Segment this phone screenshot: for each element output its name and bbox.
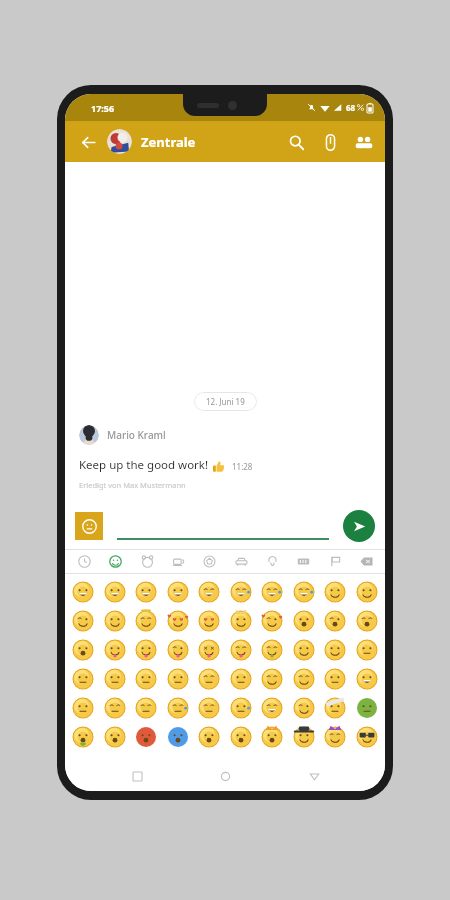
staticText: Keep up the good work! bbox=[79, 457, 209, 473]
button[interactable]: Animals bbox=[134, 550, 160, 573]
button[interactable]: Emoji bbox=[352, 577, 382, 606]
button[interactable]: Emoji bbox=[131, 693, 161, 722]
button[interactable]: Emoji bbox=[75, 512, 103, 540]
button[interactable]: Emoji bbox=[226, 693, 256, 722]
button[interactable]: Emoji bbox=[289, 606, 319, 635]
button[interactable]: Emoji bbox=[257, 577, 287, 606]
button[interactable]: Back bbox=[73, 127, 103, 157]
button[interactable]: Emoji bbox=[320, 635, 350, 664]
button[interactable]: Emoji bbox=[100, 606, 130, 635]
button[interactable]: Emoji bbox=[194, 693, 224, 722]
button[interactable]: Emoji bbox=[352, 693, 382, 722]
button[interactable]: 12. Juni 19 bbox=[194, 392, 257, 411]
button[interactable]: Emoji bbox=[68, 577, 98, 606]
staticText: 17:56 bbox=[91, 102, 115, 114]
button[interactable]: Emoji bbox=[289, 722, 319, 751]
button[interactable]: Emoji bbox=[289, 577, 319, 606]
button[interactable]: Emoji bbox=[131, 606, 161, 635]
button[interactable]: Emoji bbox=[100, 635, 130, 664]
button[interactable]: Emoji bbox=[163, 577, 193, 606]
button[interactable]: Emoji bbox=[194, 664, 224, 693]
button[interactable]: Emoji bbox=[226, 635, 256, 664]
button[interactable]: Emoji bbox=[226, 722, 256, 751]
button[interactable]: Emoji bbox=[257, 693, 287, 722]
button[interactable]: Send bbox=[343, 510, 375, 542]
button[interactable]: Emoji bbox=[320, 693, 350, 722]
staticText: 68 bbox=[346, 102, 356, 113]
button[interactable]: Emoji bbox=[68, 722, 98, 751]
button[interactable]: Emoji bbox=[100, 722, 130, 751]
button[interactable]: Emoji bbox=[163, 635, 193, 664]
button[interactable]: Emoji bbox=[257, 722, 287, 751]
button[interactable]: Emoji bbox=[320, 606, 350, 635]
button[interactable]: Emoji bbox=[131, 664, 161, 693]
button[interactable]: Emoji bbox=[289, 664, 319, 693]
button[interactable]: Emoji bbox=[163, 606, 193, 635]
button[interactable]: Emoji bbox=[289, 693, 319, 722]
button[interactable]: Search bbox=[279, 125, 313, 159]
button[interactable]: Emoji bbox=[226, 664, 256, 693]
button[interactable]: Home bbox=[208, 761, 242, 791]
button[interactable]: Flags bbox=[322, 550, 348, 573]
staticText: Mario Kraml bbox=[107, 428, 166, 442]
button[interactable]: Food bbox=[165, 550, 191, 573]
button[interactable]: Emoji bbox=[68, 606, 98, 635]
button[interactable]: Emoji bbox=[257, 606, 287, 635]
button[interactable]: Emoji bbox=[100, 664, 130, 693]
button[interactable]: Emoji bbox=[226, 606, 256, 635]
button[interactable]: Emoji bbox=[163, 722, 193, 751]
button[interactable]: Emoji bbox=[194, 606, 224, 635]
staticText: 12. Juni 19 bbox=[206, 396, 245, 407]
button[interactable]: Symbols bbox=[290, 550, 316, 573]
button[interactable]: Back bbox=[297, 761, 331, 791]
button[interactable]: Recent bbox=[71, 550, 97, 573]
button[interactable]: Emoji bbox=[257, 664, 287, 693]
button[interactable]: Emoji bbox=[194, 577, 224, 606]
button[interactable]: Emoji bbox=[352, 664, 382, 693]
button[interactable]: Attach bbox=[313, 125, 347, 159]
button[interactable]: Emoji bbox=[68, 664, 98, 693]
button[interactable] bbox=[79, 425, 99, 445]
button[interactable]: Emoji bbox=[352, 606, 382, 635]
button[interactable]: Zentrale bbox=[141, 133, 196, 151]
button[interactable]: Emoji bbox=[131, 635, 161, 664]
button[interactable]: Recents bbox=[120, 761, 154, 791]
button[interactable] bbox=[117, 512, 329, 540]
button[interactable]: Emoji bbox=[163, 693, 193, 722]
button[interactable]: Objects bbox=[259, 550, 285, 573]
button[interactable]: Emoji bbox=[320, 577, 350, 606]
button[interactable]: Emoji bbox=[68, 635, 98, 664]
button[interactable]: Travel bbox=[228, 550, 254, 573]
button[interactable]: Emoji bbox=[352, 722, 382, 751]
button[interactable]: Emoji bbox=[194, 722, 224, 751]
button[interactable] bbox=[107, 129, 132, 154]
button[interactable]: Emoji bbox=[320, 722, 350, 751]
button[interactable]: Activity bbox=[196, 550, 222, 573]
button[interactable]: Backspace bbox=[353, 550, 379, 573]
button[interactable]: Emoji bbox=[100, 577, 130, 606]
button[interactable]: Emoji bbox=[68, 693, 98, 722]
button[interactable]: Emoji bbox=[194, 635, 224, 664]
button[interactable]: Emoji bbox=[226, 577, 256, 606]
button[interactable]: Members bbox=[347, 125, 381, 159]
staticText: 11:28 bbox=[232, 461, 253, 472]
button[interactable]: Emoji bbox=[131, 577, 161, 606]
button[interactable]: Emoji bbox=[100, 693, 130, 722]
button[interactable]: Emoji bbox=[352, 635, 382, 664]
button[interactable]: Emoji bbox=[257, 635, 287, 664]
button[interactable]: Emoji bbox=[320, 664, 350, 693]
button[interactable]: Emoji bbox=[163, 664, 193, 693]
button[interactable]: Smileys bbox=[102, 550, 128, 573]
button[interactable]: Emoji bbox=[131, 722, 161, 751]
button[interactable]: Emoji bbox=[289, 635, 319, 664]
staticText: Erledigt von Max Mustermann bbox=[79, 480, 186, 490]
